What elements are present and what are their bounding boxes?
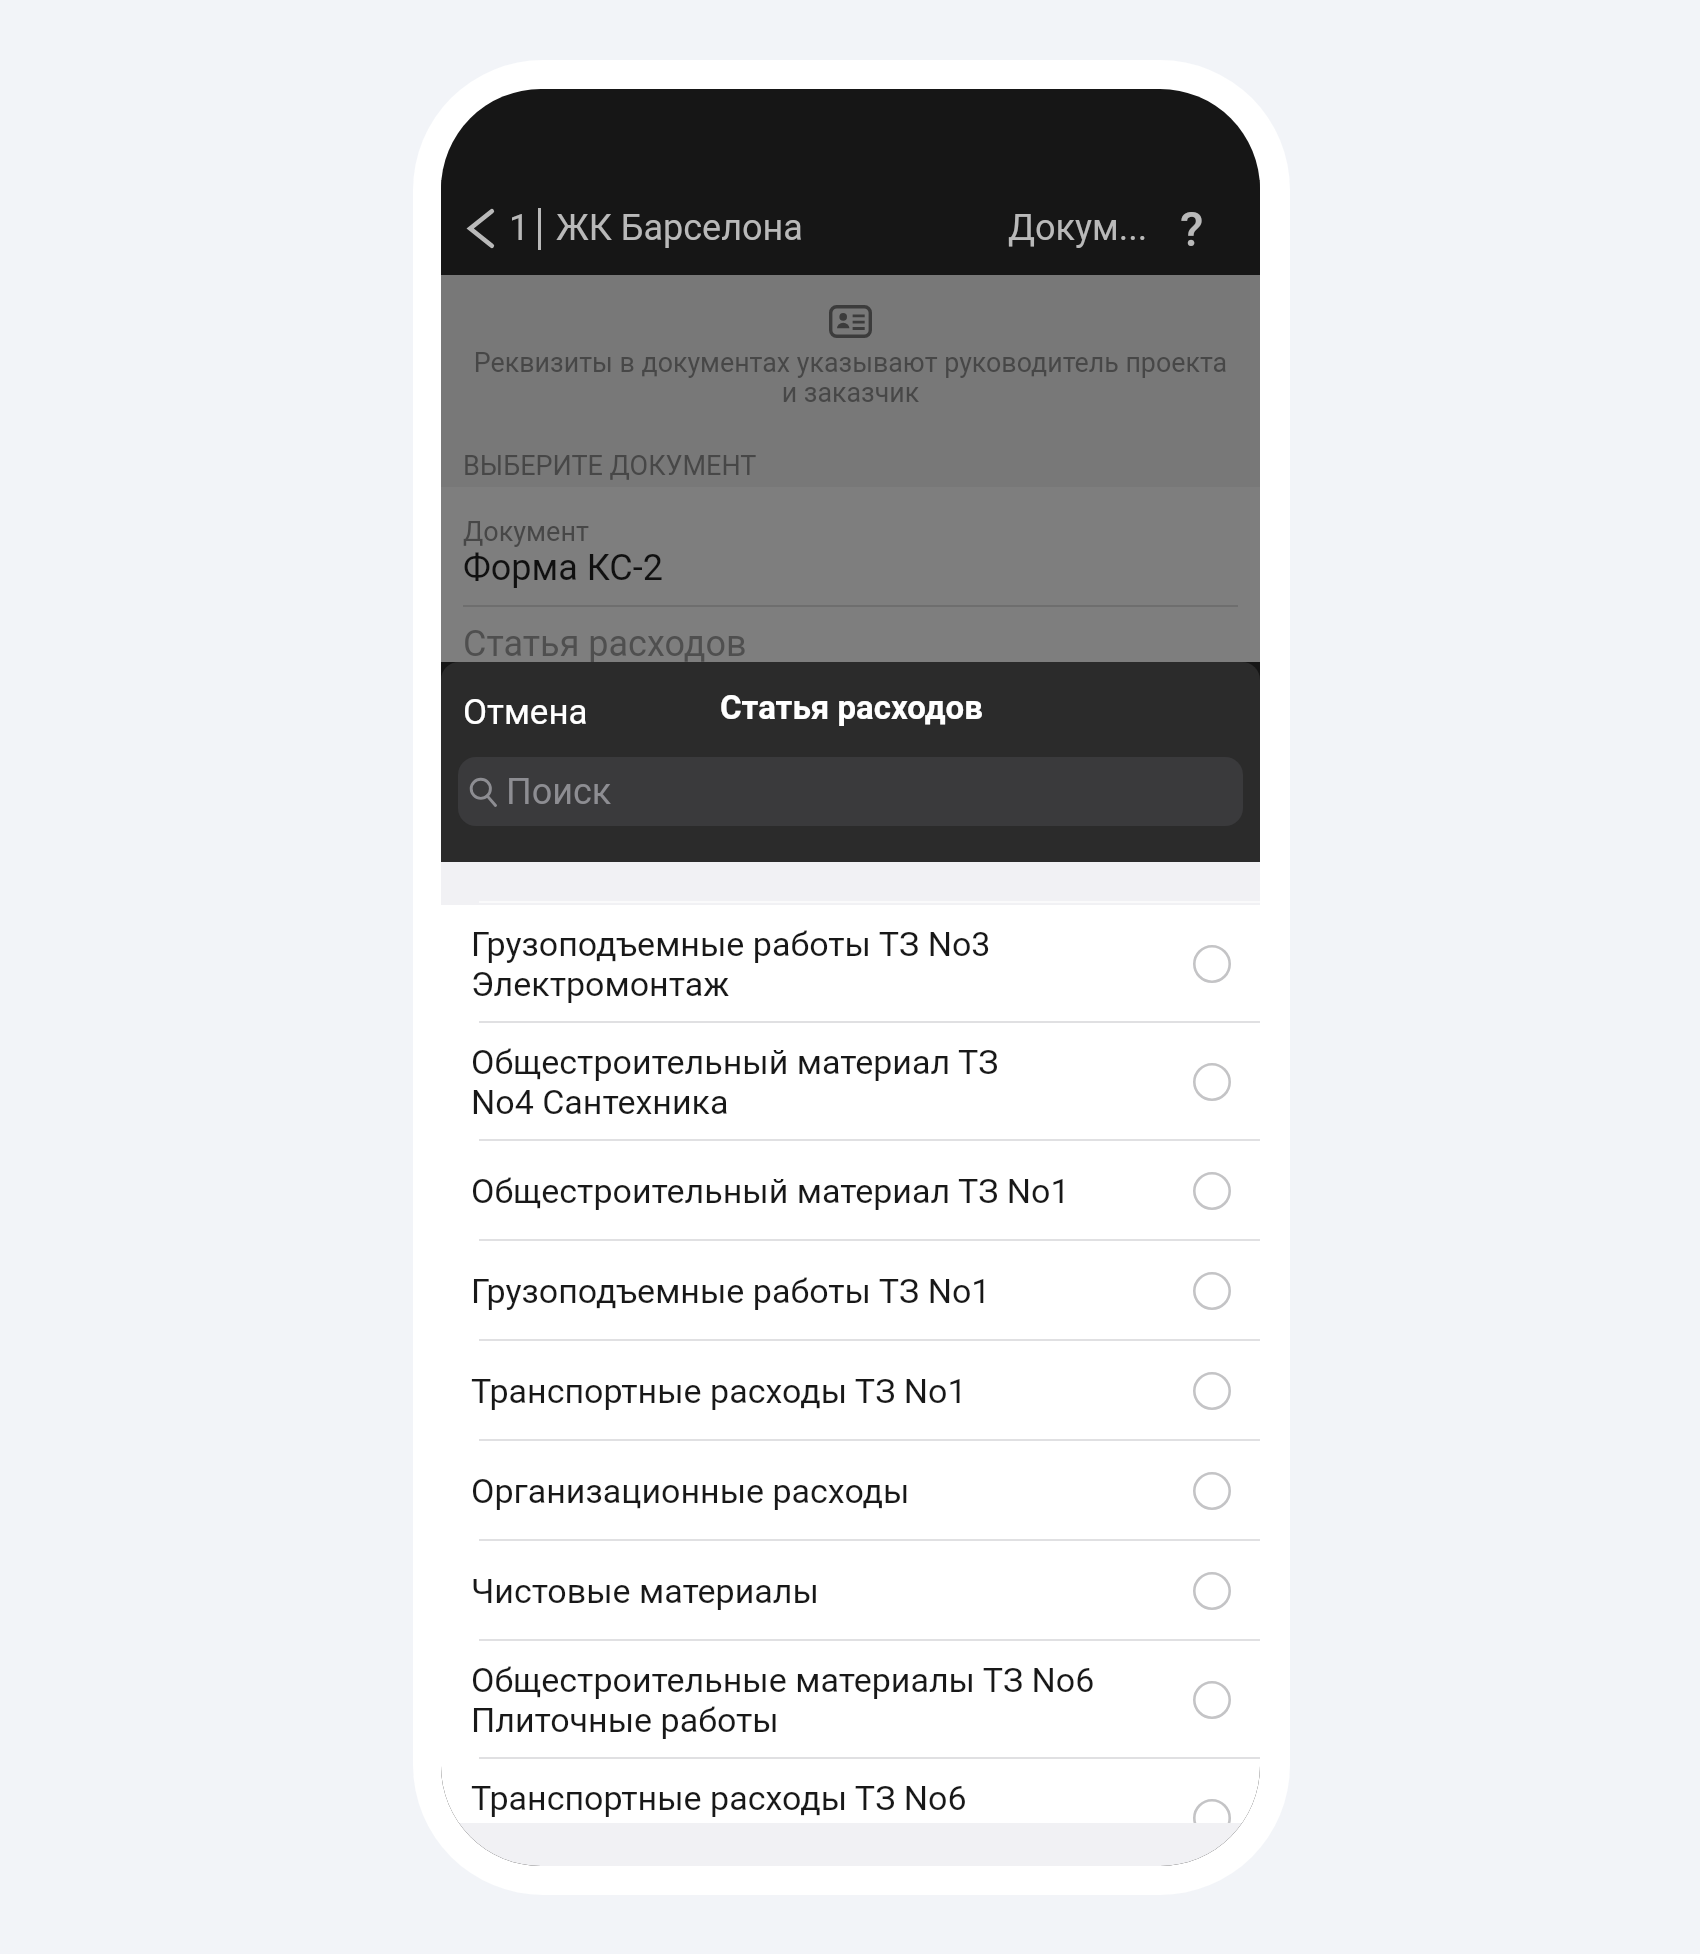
button[interactable]: Транспортные расходы ТЗ No1 (441, 1341, 1260, 1441)
button[interactable]: Грузоподъемные работы ТЗ No3 Электромонт… (441, 905, 1260, 1023)
staticText: Грузоподъемные работы ТЗ No1 (471, 1271, 991, 1311)
staticText: Общестроительный материал ТЗ No4 Сантехн… (471, 1042, 999, 1122)
staticText: 1 (509, 207, 530, 249)
staticText: ВЫБЕРИТЕ ДОКУМЕНТ (463, 450, 757, 482)
button[interactable]: Грузоподъемные работы ТЗ No1 (441, 1241, 1260, 1341)
staticText: Форма КС-2 (463, 547, 663, 589)
staticText: Общестроительный материал ТЗ No1 (471, 1171, 1070, 1211)
staticText: Организационные расходы (471, 1471, 910, 1511)
button[interactable]: Транспортные расходы ТЗ No6 (441, 1759, 1260, 1823)
staticText: Реквизиты в документах указывают руковод… (471, 347, 1230, 408)
button[interactable]: Чистовые материалы (441, 1541, 1260, 1641)
staticText: Чистовые материалы (471, 1571, 819, 1611)
button[interactable]: Организационные расходы (441, 1441, 1260, 1541)
staticText: Докум... (1008, 207, 1148, 249)
staticText: Статья расходов (463, 623, 747, 665)
staticText: Грузоподъемные работы ТЗ No3 Электромонт… (471, 924, 991, 1004)
button[interactable]: Общестроительный материал ТЗ No4 Сантехн… (441, 1023, 1260, 1141)
button[interactable]: Отмена (451, 682, 600, 743)
staticText: Транспортные расходы ТЗ No1 (471, 1371, 967, 1411)
staticText: Поиск (506, 771, 612, 813)
staticText: Общестроительные материалы ТЗ No6 Плиточ… (471, 1660, 1095, 1740)
button[interactable]: Докум... (996, 197, 1160, 259)
staticText: Статья расходов (720, 688, 983, 727)
button[interactable]: Help (1166, 195, 1218, 263)
button[interactable]: Общестроительный материал ТЗ No1 (441, 1141, 1260, 1241)
staticText: ? (1180, 201, 1204, 257)
staticText: Документ (463, 516, 589, 548)
button[interactable]: Поиск (458, 757, 1243, 826)
staticText: Отмена (463, 692, 588, 733)
button[interactable]: Back (451, 188, 511, 268)
staticText: Транспортные расходы ТЗ No6 (471, 1778, 967, 1818)
button[interactable]: Общестроительные материалы ТЗ No6 Плиточ… (441, 1641, 1260, 1759)
staticText: ЖК Барселона (556, 207, 803, 249)
